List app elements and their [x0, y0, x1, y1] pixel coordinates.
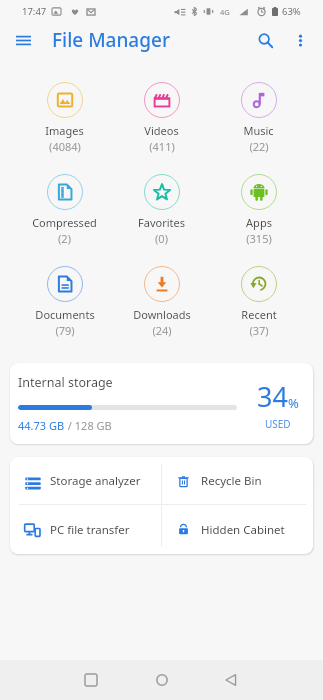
button[interactable]: Apps [210, 174, 307, 246]
staticText: Compressed [32, 215, 97, 230]
staticText: USED [265, 417, 291, 431]
staticText: Downloads [133, 307, 191, 322]
staticText: Music [243, 123, 274, 138]
button[interactable]: More options [285, 25, 315, 55]
staticText: 44.73 GB [18, 418, 65, 433]
staticText: Favorites [138, 215, 185, 230]
staticText: File Manager [52, 27, 170, 53]
button[interactable]: Hidden Cabinet [161, 505, 313, 554]
staticText: % [288, 394, 299, 412]
staticText: Images [45, 123, 84, 138]
staticText: (37) [249, 323, 269, 338]
staticText: Storage analyzer [50, 473, 141, 489]
staticText: (411) [149, 139, 175, 154]
staticText: (2) [58, 231, 71, 246]
staticText: (0) [155, 231, 168, 246]
button[interactable]: Recents [74, 663, 108, 697]
button[interactable]: Recycle Bin [161, 457, 313, 505]
staticText: (315) [246, 231, 272, 246]
staticText: (4084) [49, 139, 81, 154]
button[interactable]: Search [249, 24, 281, 56]
staticText: PC file transfer [50, 522, 130, 538]
staticText: Documents [35, 307, 95, 322]
button[interactable]: Menu [8, 25, 38, 55]
staticText: (22) [249, 139, 269, 154]
button[interactable]: Downloads [113, 266, 210, 338]
staticText: 4G [220, 7, 230, 17]
staticText: Videos [144, 123, 179, 138]
button[interactable]: Internal storage [10, 363, 313, 444]
staticText: 34 [257, 378, 288, 415]
button[interactable]: Home [145, 663, 179, 697]
staticText: (79) [55, 323, 75, 338]
staticText: Recycle Bin [201, 473, 262, 489]
staticText: Apps [246, 215, 272, 230]
button[interactable]: Favorites [113, 174, 210, 246]
staticText: Hidden Cabinet [201, 522, 285, 538]
button[interactable]: Back [214, 663, 248, 697]
staticText: Internal storage [18, 374, 113, 391]
button[interactable]: Storage analyzer [10, 457, 161, 505]
button[interactable]: Videos [113, 82, 210, 154]
button[interactable]: Music [210, 82, 307, 154]
button[interactable]: PC file transfer [10, 505, 161, 554]
staticText: 17:47 [22, 5, 47, 18]
staticText: / 128 GB [65, 418, 112, 433]
staticText: (24) [152, 323, 172, 338]
staticText: 63% [282, 5, 301, 18]
staticText: Recent [241, 307, 277, 322]
button[interactable]: Recent [210, 266, 307, 338]
button[interactable]: Images [16, 82, 113, 154]
button[interactable]: Documents [16, 266, 113, 338]
button[interactable]: Compressed [16, 174, 113, 246]
